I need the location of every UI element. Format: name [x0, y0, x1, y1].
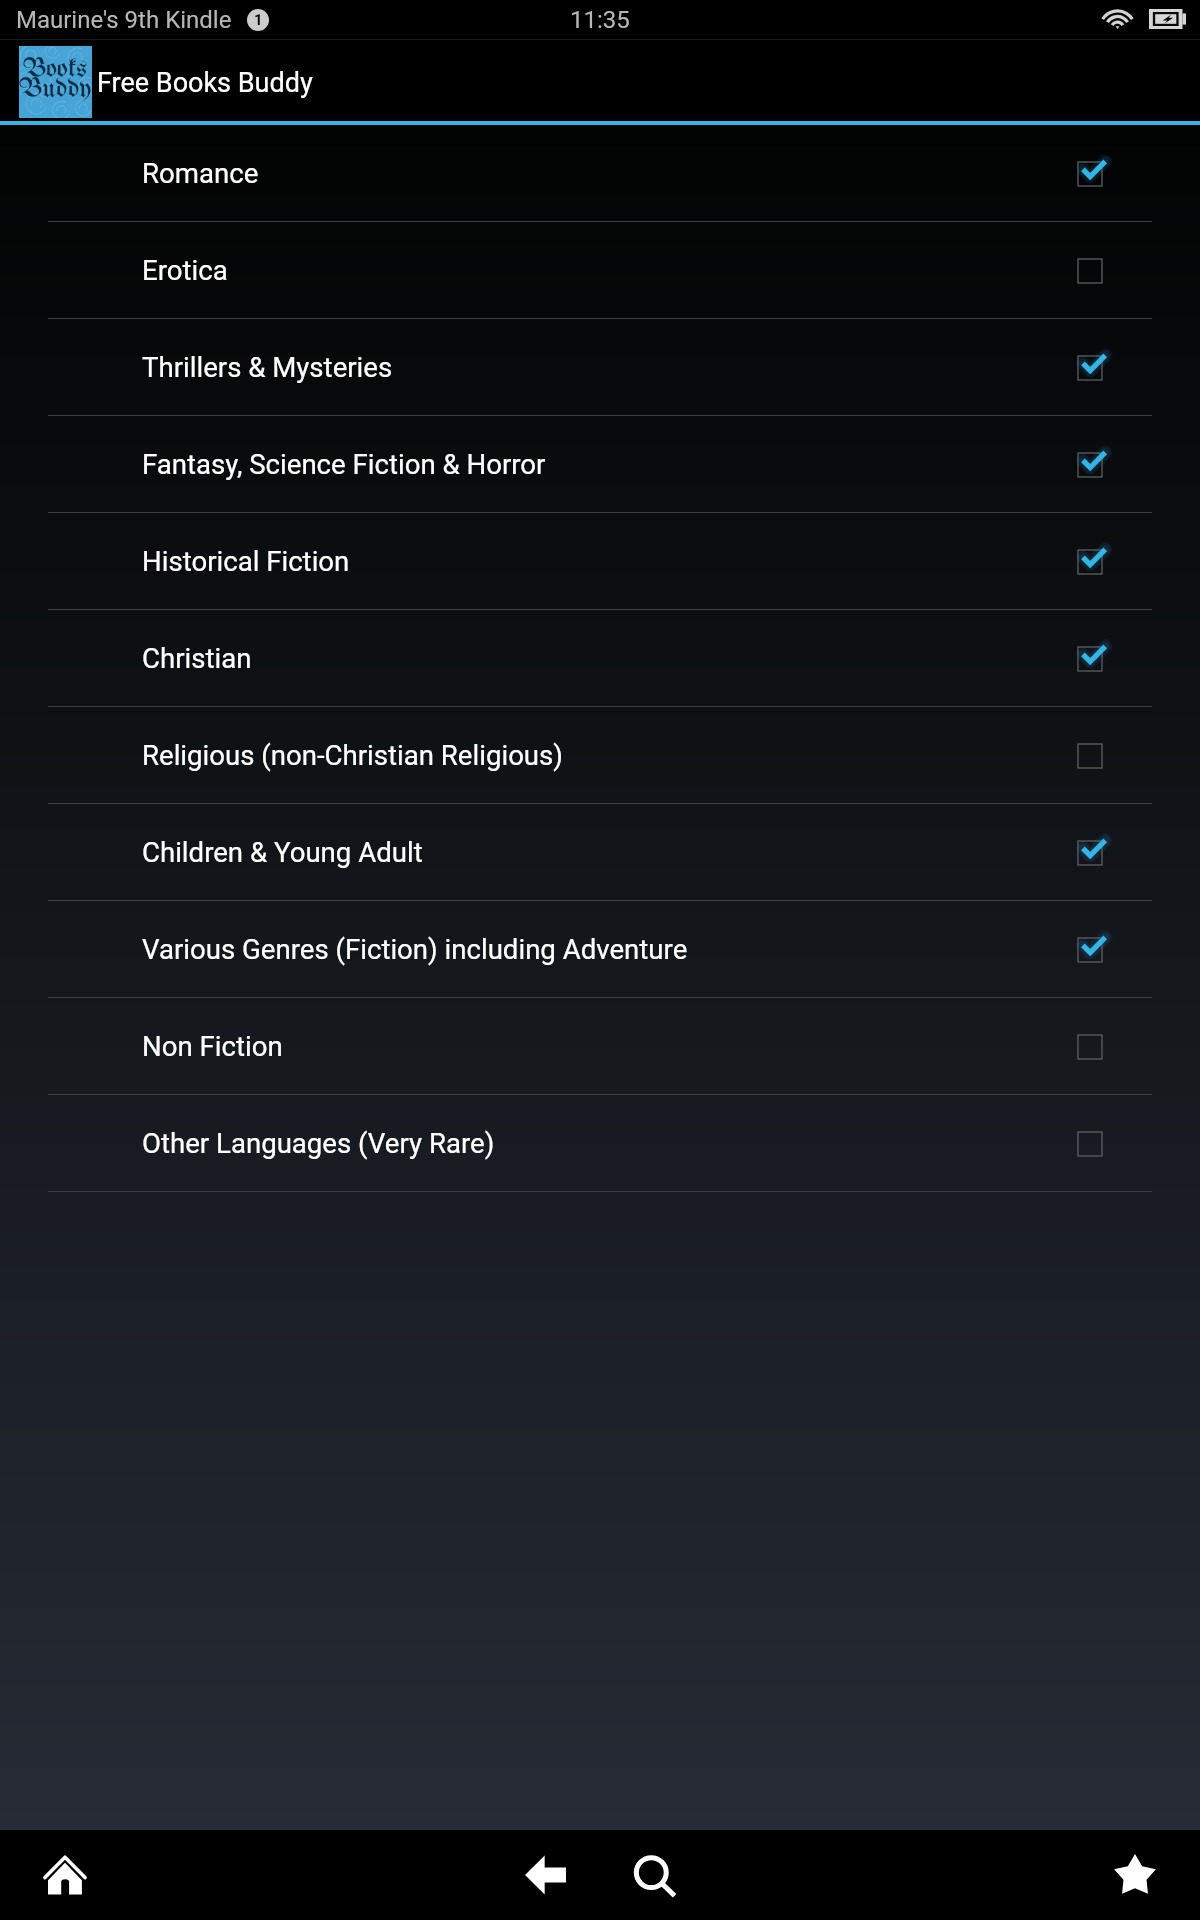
staticText: Books	[23, 57, 88, 84]
staticText: Christian	[142, 642, 252, 674]
staticText: Romance	[142, 157, 259, 189]
button[interactable]: Search	[617, 1835, 697, 1915]
staticText: Free Books Buddy	[97, 67, 313, 99]
button[interactable]: Other Languages (Very Rare)	[0, 1095, 1200, 1192]
staticText: Various Genres (Fiction) including Adven…	[142, 933, 688, 965]
button[interactable]: Religious (non-Christian Religious)	[0, 707, 1200, 804]
button[interactable]: Children & Young Adult	[0, 804, 1200, 901]
button[interactable]: Various Genres (Fiction) including Adven…	[0, 901, 1200, 998]
staticText: Thrillers & Mysteries	[142, 351, 393, 383]
staticText: Maurine's 9th Kindle	[16, 6, 232, 34]
button[interactable]: Non Fiction	[0, 998, 1200, 1095]
button[interactable]: Fantasy, Science Fiction & Horror	[0, 416, 1200, 513]
staticText: Historical Fiction	[142, 545, 350, 577]
staticText: Other Languages (Very Rare)	[142, 1127, 495, 1159]
staticText: 1	[254, 11, 263, 29]
button[interactable]: Favorites	[1095, 1835, 1175, 1915]
button[interactable]: Back	[505, 1835, 585, 1915]
button[interactable]: Historical Fiction	[0, 513, 1200, 610]
button[interactable]: Erotica	[0, 222, 1200, 319]
button[interactable]: Home	[25, 1835, 105, 1915]
button[interactable]: Thrillers & Mysteries	[0, 319, 1200, 416]
staticText: Fantasy, Science Fiction & Horror	[142, 448, 546, 480]
button[interactable]: Christian	[0, 610, 1200, 707]
staticText: Children & Young Adult	[142, 836, 423, 868]
button[interactable]: Romance	[0, 125, 1200, 222]
staticText: Non Fiction	[142, 1030, 283, 1062]
staticText: 11:35	[570, 6, 630, 34]
staticText: Religious (non-Christian Religious)	[142, 739, 563, 771]
staticText: Erotica	[142, 254, 228, 286]
staticText: Buddy	[19, 77, 92, 104]
